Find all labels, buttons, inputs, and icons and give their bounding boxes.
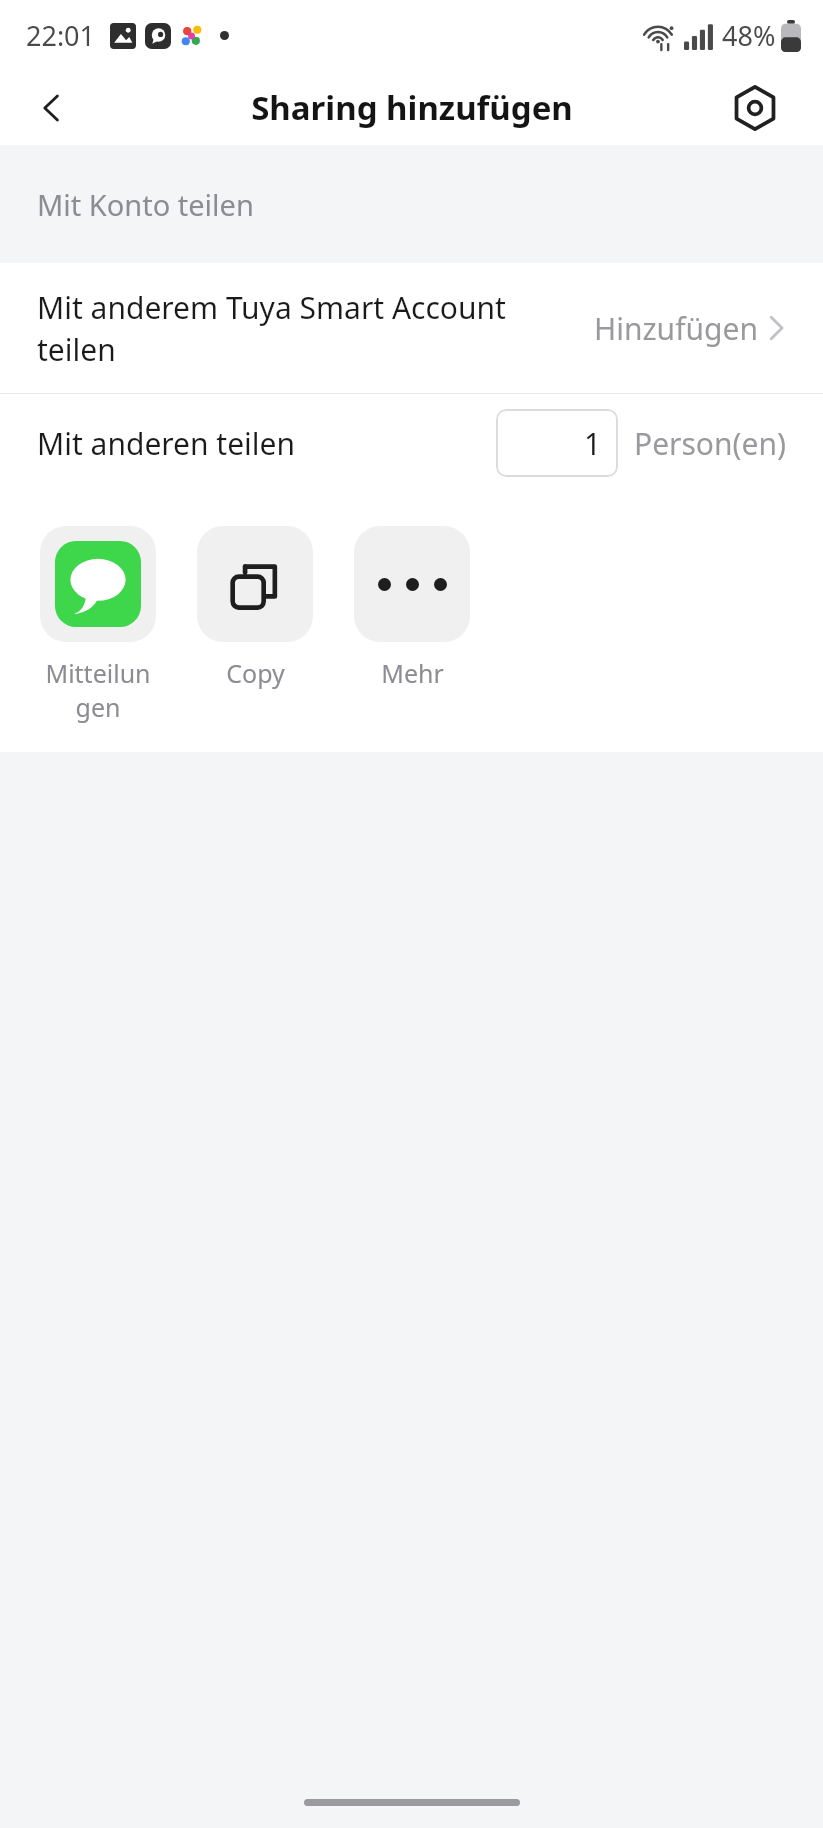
button[interactable]: Mehr	[354, 526, 470, 690]
button[interactable]: Settings	[719, 72, 791, 144]
staticText: Hinzufügen	[594, 308, 758, 349]
staticText: Copy	[226, 656, 285, 690]
button[interactable]: Copy	[197, 526, 313, 690]
staticText: Mit anderem Tuya Smart Account teilen	[37, 287, 574, 370]
staticText: Sharing hinzufügen	[251, 85, 573, 130]
staticText: Mit anderen teilen	[37, 423, 296, 464]
staticText: 1	[584, 423, 602, 464]
staticText: 48%	[722, 17, 776, 54]
button[interactable]: 1	[496, 409, 618, 477]
staticText: Mehr	[381, 656, 444, 690]
button[interactable]: Mit anderem Tuya Smart Account teilen	[0, 263, 823, 393]
staticText: Mit Konto teilen	[37, 185, 254, 224]
button[interactable]: Back	[14, 70, 90, 145]
button[interactable]: Mitteilungen	[40, 526, 156, 724]
staticText: 22:01	[26, 17, 96, 54]
staticText: Mitteilungen	[40, 656, 156, 724]
staticText: Person(en)	[634, 423, 786, 464]
